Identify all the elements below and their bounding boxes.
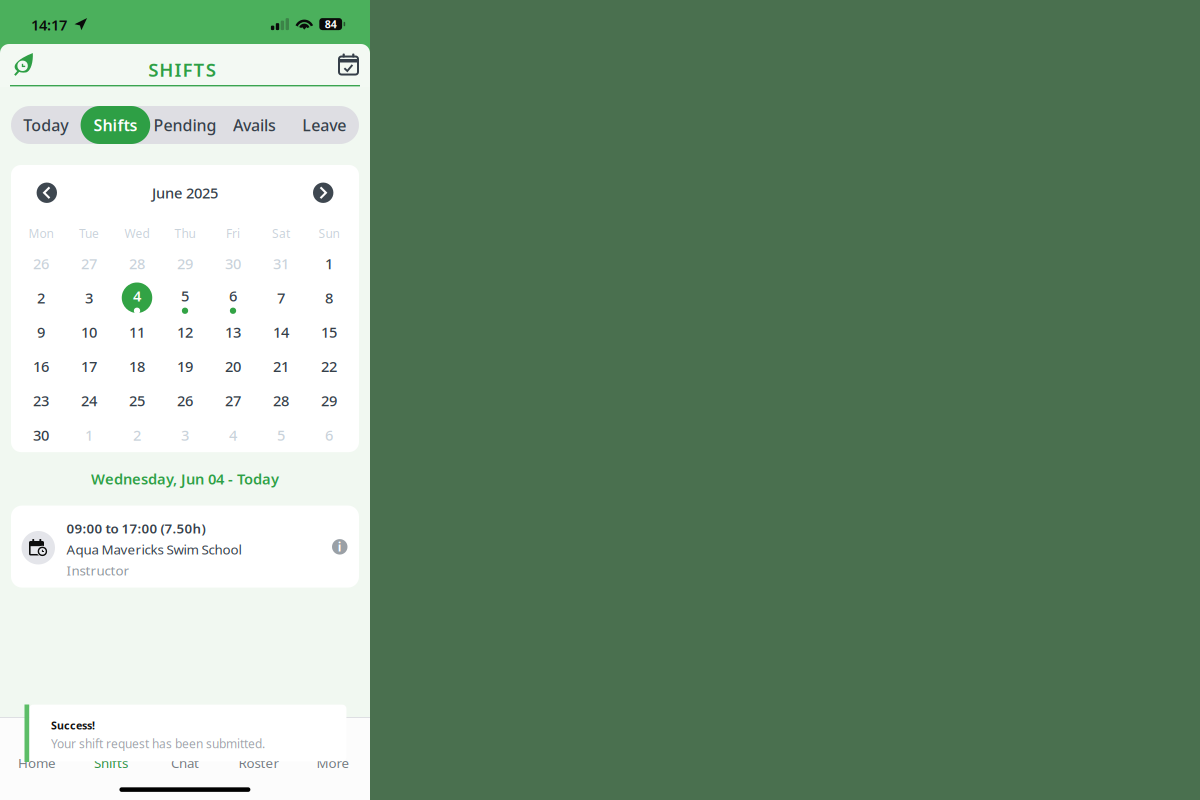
staticText: 9 xyxy=(37,322,45,342)
button[interactable]: 09:00 to 17:00 (7.50h) xyxy=(11,506,359,588)
staticText: Success! xyxy=(51,718,95,732)
staticText: 30 xyxy=(225,254,241,273)
staticText: Sat xyxy=(272,225,290,241)
staticText: Pending xyxy=(153,114,216,136)
staticText: Tue xyxy=(79,225,99,241)
staticText: 2 xyxy=(133,425,141,445)
button[interactable]: More xyxy=(296,754,370,796)
staticText: Your shift request has been submitted. xyxy=(51,736,265,751)
staticText: Mon xyxy=(28,225,53,241)
staticText: More xyxy=(316,754,349,772)
staticText: 13 xyxy=(225,322,241,342)
button[interactable]: Avails xyxy=(220,106,289,144)
staticText: Aqua Mavericks Swim School xyxy=(66,541,241,558)
staticText: 16 xyxy=(33,357,49,376)
staticText: 26 xyxy=(177,391,193,410)
staticText: 14 xyxy=(273,322,289,342)
staticText: Leave xyxy=(302,114,346,136)
staticText: Thu xyxy=(174,225,195,241)
staticText: 8 xyxy=(325,288,333,307)
button[interactable]: Previous month xyxy=(35,181,59,205)
staticText: 10 xyxy=(81,322,97,342)
button[interactable]: Leave xyxy=(289,106,359,144)
button[interactable]: Calendar xyxy=(338,53,370,85)
staticText: 6 xyxy=(229,286,237,305)
staticText: Today xyxy=(23,114,68,136)
staticText: Wednesday, Jun 04 - Today xyxy=(91,469,279,489)
button[interactable]: Shifts xyxy=(74,754,148,796)
staticText: 12 xyxy=(177,322,193,342)
staticText: 20 xyxy=(225,357,241,376)
staticText: i xyxy=(338,539,342,555)
button[interactable]: Pending xyxy=(150,106,220,144)
staticText: 6 xyxy=(325,425,333,445)
staticText: SHIFTS xyxy=(148,57,222,82)
staticText: 3 xyxy=(181,425,189,445)
staticText: 30 xyxy=(33,425,49,445)
staticText: 27 xyxy=(81,254,97,273)
staticText: Wed xyxy=(124,225,149,241)
button[interactable]: Timesheet xyxy=(14,52,48,88)
button[interactable]: Roster xyxy=(222,754,296,796)
staticText: 27 xyxy=(225,391,241,410)
staticText: 24 xyxy=(81,391,97,410)
staticText: 28 xyxy=(129,254,145,273)
staticText: Home xyxy=(18,754,56,772)
staticText: 22 xyxy=(321,357,337,376)
staticText: 26 xyxy=(33,254,49,273)
staticText: 09:00 to 17:00 (7.50h) xyxy=(66,520,205,537)
button[interactable]: Shifts xyxy=(81,106,150,144)
staticText: Roster xyxy=(238,754,279,772)
staticText: 3 xyxy=(85,288,93,307)
staticText: 31 xyxy=(273,254,289,273)
button[interactable]: Next month xyxy=(311,181,335,205)
staticText: 21 xyxy=(273,357,289,376)
staticText: 5 xyxy=(277,425,285,445)
staticText: 29 xyxy=(177,254,193,273)
staticText: 4 xyxy=(133,286,141,305)
staticText: June 2025 xyxy=(152,183,218,202)
staticText: 7 xyxy=(277,288,285,307)
staticText: 15 xyxy=(321,322,337,342)
staticText: 19 xyxy=(177,357,193,376)
staticText: Avails xyxy=(233,114,276,136)
staticText: 28 xyxy=(273,391,289,410)
staticText: Shifts xyxy=(93,114,137,136)
staticText: 23 xyxy=(33,391,49,410)
staticText: 1 xyxy=(85,425,93,445)
button[interactable]: Today xyxy=(11,106,81,144)
staticText: 14:17 xyxy=(31,15,67,34)
staticText: 25 xyxy=(129,391,145,410)
staticText: 4 xyxy=(229,425,237,445)
staticText: Sun xyxy=(318,225,339,241)
staticText: Instructor xyxy=(66,562,129,579)
staticText: 29 xyxy=(321,391,337,410)
staticText: 18 xyxy=(129,357,145,376)
staticText: 5 xyxy=(181,286,189,305)
staticText: 17 xyxy=(81,357,97,376)
staticText: Shifts xyxy=(94,754,128,772)
staticText: 84 xyxy=(325,17,337,31)
button[interactable]: Home xyxy=(0,754,74,796)
staticText: 2 xyxy=(37,288,45,307)
staticText: Chat xyxy=(171,754,199,772)
staticText: 11 xyxy=(129,322,145,342)
staticText: Fri xyxy=(226,225,240,241)
staticText: 1 xyxy=(325,254,333,273)
button[interactable]: Chat xyxy=(148,754,222,796)
